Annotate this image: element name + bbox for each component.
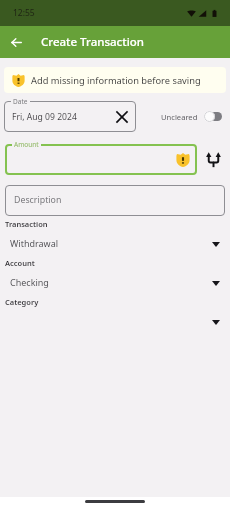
button[interactable]: Back	[4, 30, 28, 54]
staticText: Account	[5, 258, 35, 268]
staticText: Create Transaction	[41, 34, 144, 50]
staticText: Amount	[14, 140, 39, 149]
staticText: Description	[14, 194, 62, 206]
button[interactable]: Uncleared toggle	[161, 111, 222, 122]
staticText: Date	[13, 97, 28, 106]
staticText: 12:55	[13, 7, 35, 19]
staticText: Transaction	[5, 219, 48, 229]
button[interactable]: Clear date	[112, 107, 132, 127]
staticText: Withdrawal	[10, 237, 59, 249]
staticText: Uncleared	[161, 112, 198, 122]
button[interactable]: Category	[0, 296, 230, 335]
button[interactable]: Account	[0, 257, 230, 296]
button[interactable]	[5, 144, 197, 175]
staticText: Category	[5, 297, 39, 307]
button[interactable]: Description	[5, 185, 225, 216]
button[interactable]: Split transaction	[202, 149, 224, 171]
staticText: Fri, Aug 09 2024	[12, 111, 77, 123]
staticText: Checking	[10, 276, 49, 288]
button[interactable]: Transaction	[0, 218, 230, 257]
button[interactable]: Add missing information before saving	[4, 67, 226, 93]
staticText: Add missing information before saving	[31, 74, 201, 87]
button[interactable]	[4, 101, 136, 132]
